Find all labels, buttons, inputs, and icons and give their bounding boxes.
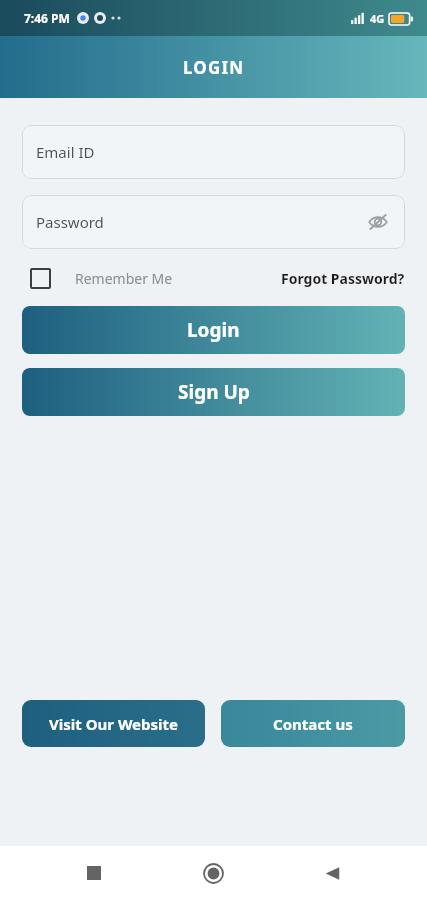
staticText: Password <box>36 212 104 232</box>
staticText: Sign Up <box>178 379 250 405</box>
button[interactable]: Login <box>22 306 405 354</box>
staticText: Contact us <box>273 714 353 734</box>
staticText: 4G <box>370 11 385 26</box>
button[interactable]: Back <box>308 849 356 897</box>
staticText: Forgot Password? <box>281 269 405 288</box>
button[interactable]: Toggle password visibility <box>365 209 391 235</box>
button[interactable]: Password <box>22 195 405 249</box>
button[interactable]: Sign Up <box>22 368 405 416</box>
button[interactable]: Email ID <box>22 125 405 179</box>
staticText: Email ID <box>36 142 95 162</box>
staticText: Remember Me <box>75 269 173 288</box>
button[interactable]: Remember Me <box>22 268 173 289</box>
staticText: 7:46 PM <box>24 10 70 26</box>
staticText: LOGIN <box>183 56 245 79</box>
button[interactable]: Contact us <box>221 700 405 747</box>
button[interactable]: Visit Our Website <box>22 700 205 747</box>
staticText: Visit Our Website <box>49 714 179 734</box>
button[interactable]: Home <box>189 849 237 897</box>
staticText: Login <box>187 317 240 343</box>
button[interactable]: Recent apps <box>70 849 118 897</box>
button[interactable]: Forgot Password? <box>281 269 405 288</box>
